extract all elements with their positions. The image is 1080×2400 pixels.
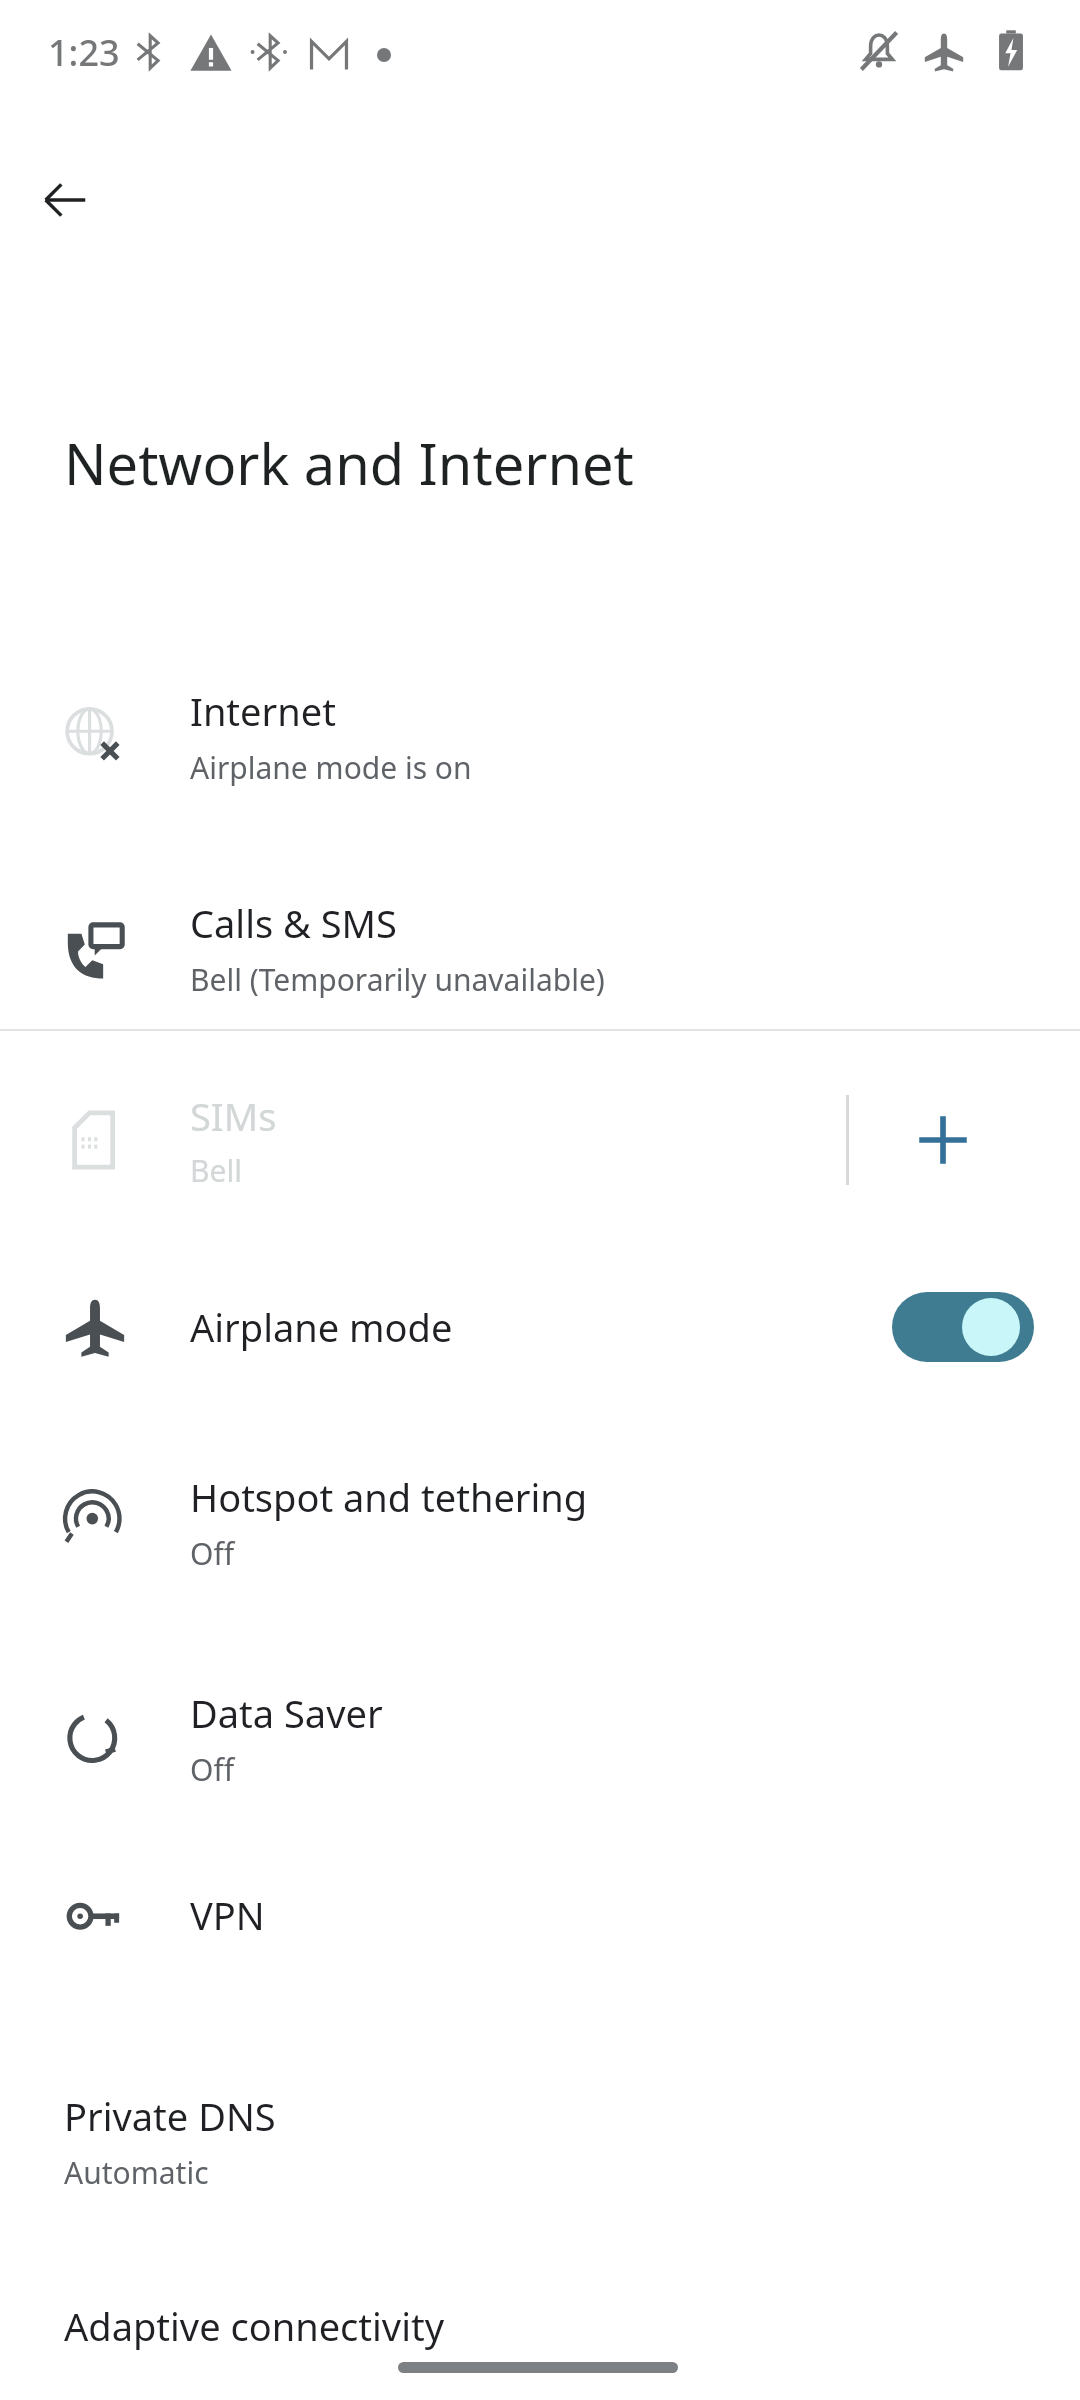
staticText: Hotspot and tethering [190,1471,588,1523]
staticText: Off [190,1533,235,1574]
button[interactable]: Calls and SMS [0,848,1080,1048]
other: Internet [0,702,190,770]
button[interactable]: Hotspot and tethering [0,1422,1080,1622]
button[interactable]: Data Saver [0,1638,1080,1838]
staticText: Bell (Temporarily unavailable) [190,959,605,1000]
button[interactable]: Private DNS [0,2090,1080,2230]
button[interactable]: Internet [0,636,1080,836]
button[interactable]: SIMs [0,1075,840,1205]
button[interactable]: Airplane mode [0,1263,1080,1391]
other: Hotspot and tethering [0,1488,190,1556]
staticText: Internet [190,685,336,737]
button[interactable]: Adaptive connectivity [0,2300,1080,2400]
staticText: SIMs [190,1090,277,1142]
staticText: Bell [190,1150,242,1191]
other: Data Saver [0,1704,190,1772]
staticText: Adaptive connectivity [64,2300,445,2352]
staticText: Network and Internet [64,425,634,501]
staticText: Automatic [64,2152,209,2193]
button[interactable]: VPN [0,1850,1080,1980]
staticText: Calls & SMS [190,897,397,949]
staticText: Data Saver [190,1687,383,1739]
staticText: 1:23 [48,28,120,77]
button[interactable]: Add SIM [873,1075,1013,1205]
staticText: VPN [190,1889,265,1941]
button[interactable]: Airplane mode toggle [892,1292,1034,1362]
staticText: Airplane mode [190,1301,453,1353]
staticText: Airplane mode is on [190,747,472,788]
staticText: Private DNS [64,2090,276,2142]
button[interactable]: Back [20,155,110,245]
other: Calls and SMS [0,914,190,982]
staticText: Off [190,1749,235,1790]
